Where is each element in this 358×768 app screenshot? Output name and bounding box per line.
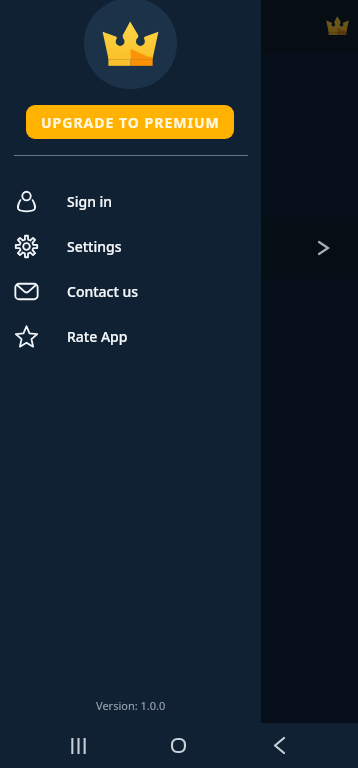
staticText: Settings	[67, 237, 122, 256]
button[interactable]: Home	[154, 723, 202, 768]
button[interactable]: Back	[255, 723, 303, 768]
button[interactable]: Sign in	[0, 179, 261, 224]
staticText: Contact us	[67, 282, 139, 301]
staticText: Version: 1.0.0	[96, 698, 166, 713]
staticText: Rate App	[67, 327, 128, 346]
staticText: UPGRADE TO PREMIUM	[41, 113, 220, 132]
staticText: Sign in	[67, 192, 113, 211]
button[interactable]: Recents	[54, 723, 102, 768]
button[interactable]: Rate App	[0, 314, 261, 359]
button[interactable]: Contact us	[0, 269, 261, 314]
button[interactable]: Settings	[0, 224, 261, 269]
button[interactable]: UPGRADE TO PREMIUM	[26, 105, 234, 139]
